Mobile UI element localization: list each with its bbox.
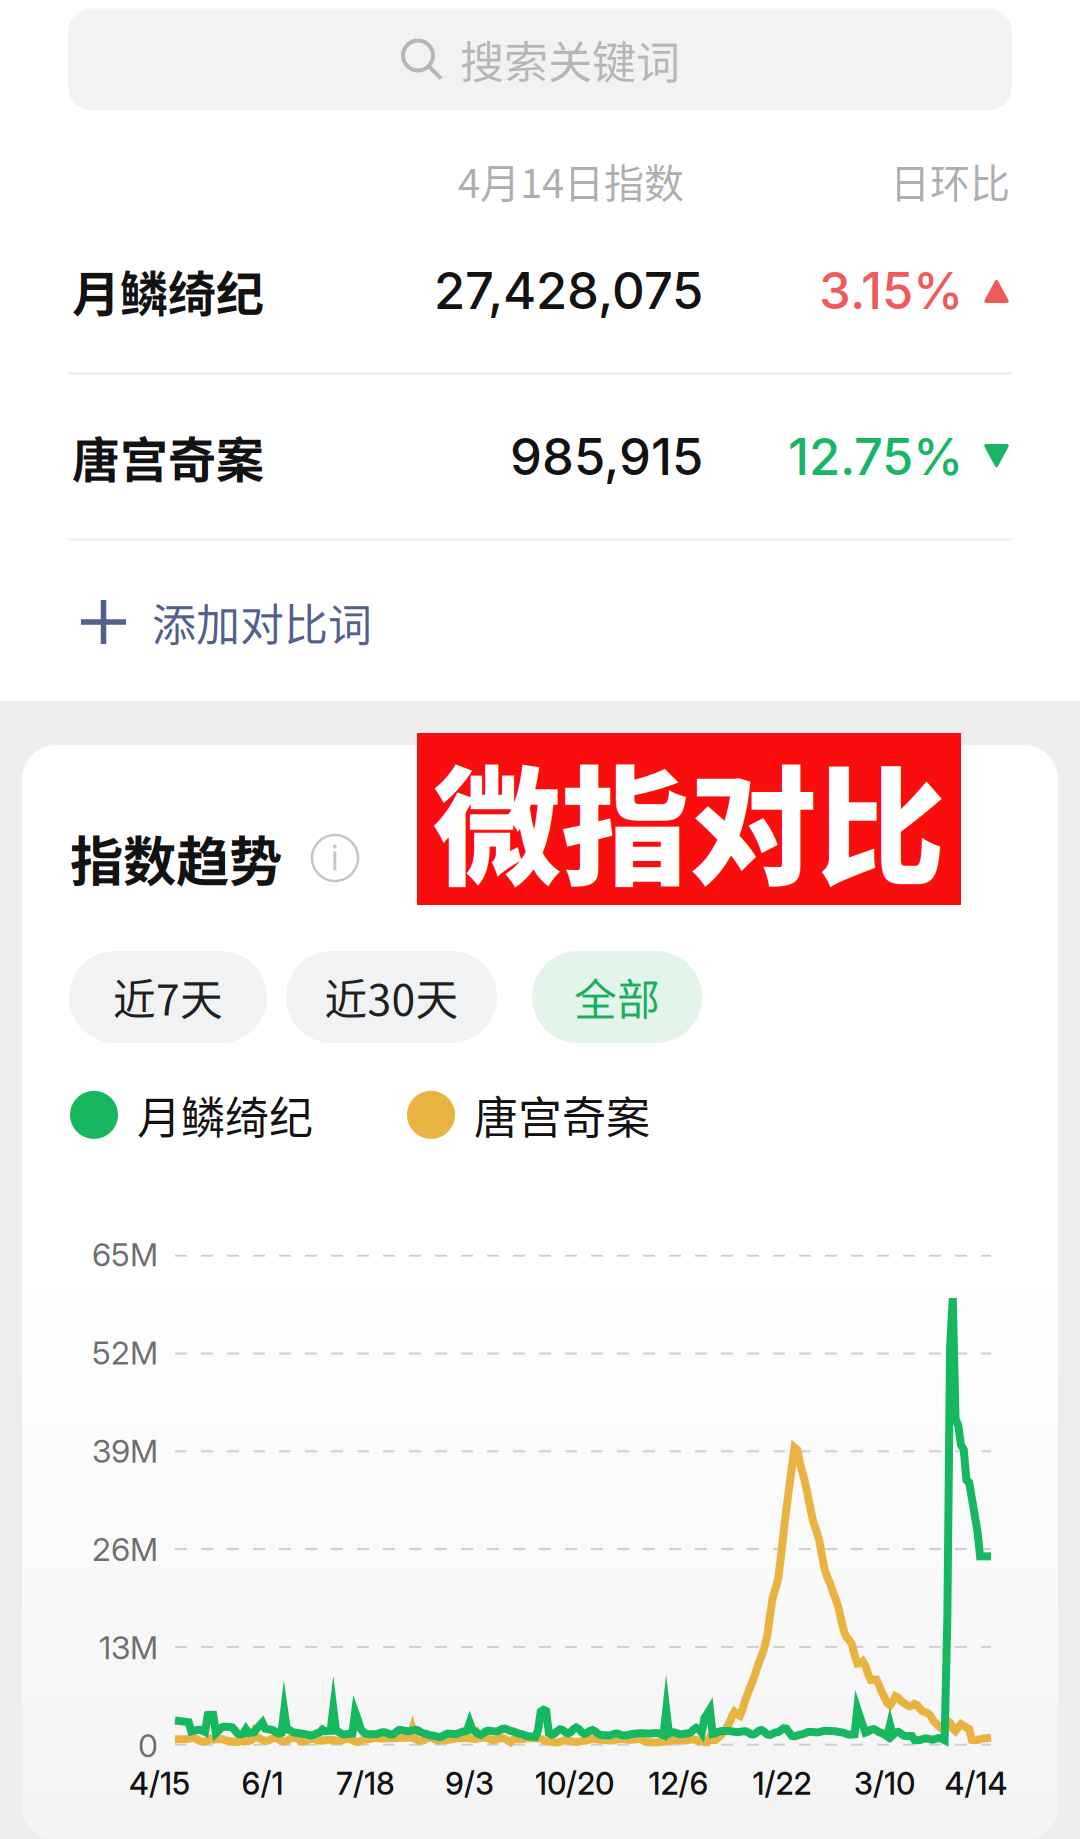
staticText: i [331,837,339,879]
staticText: 日环比 [890,151,1010,209]
staticText: 6/1 [241,1765,283,1802]
staticText: 4/14 [944,1765,1007,1802]
staticText: 9/3 [445,1765,494,1802]
staticText: 添加对比词 [152,590,372,654]
staticText: 4月14日指数 [458,151,684,209]
staticText: 搜索关键词 [460,28,680,91]
staticText: 985,915 [510,426,703,487]
staticText: 4/15 [129,1765,190,1802]
staticText: 39M [92,1432,158,1470]
staticText: 微指对比 [433,726,945,912]
staticText: 27,428,075 [434,260,703,321]
staticText: 指数趋势 [70,819,282,897]
button[interactable]: 全部 [532,951,702,1043]
staticText: 12.75% [788,426,963,487]
button[interactable]: 搜索关键词 [68,8,1012,110]
staticText: 0 [138,1726,158,1765]
staticText: 7/18 [336,1765,395,1802]
button[interactable]: 近7天 [69,951,267,1043]
staticText: 全部 [574,966,660,1028]
staticText: 13M [99,1628,158,1667]
staticText: 26M [92,1530,158,1569]
staticText: 唐宫奇案 [474,1083,650,1147]
button[interactable]: 近30天 [286,951,497,1043]
staticText: 唐宫奇案 [72,422,264,491]
staticText: 3.15% [819,260,963,321]
staticText: 65M [92,1235,158,1274]
staticText: 月鳞绮纪 [137,1083,313,1147]
staticText: 10/20 [535,1765,614,1802]
staticText: 近30天 [324,966,458,1028]
staticText: 12/6 [648,1765,708,1802]
staticText: 1/22 [752,1765,811,1802]
staticText: 52M [92,1334,158,1372]
staticText: 近7天 [113,966,223,1028]
button[interactable]: 添加对比词 [0,540,1080,703]
staticText: 月鳞绮纪 [72,256,264,325]
staticText: 3/10 [854,1765,915,1802]
